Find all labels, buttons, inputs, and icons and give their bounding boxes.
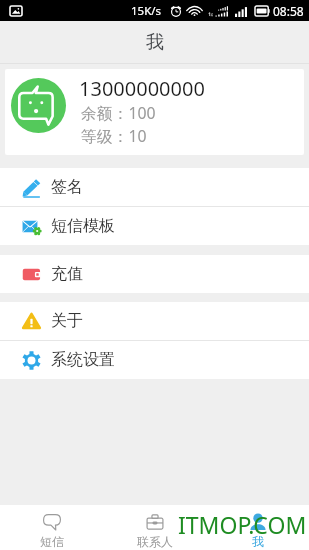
staticText: 13000000000 [79, 75, 205, 102]
button[interactable]: 短信 [0, 505, 103, 550]
staticText: ITMOP.COM [178, 509, 307, 540]
staticText: 15K/s [131, 3, 162, 19]
staticText: 系统设置 [51, 350, 115, 370]
staticText: 余额：100 [81, 102, 156, 124]
staticText: 充值 [51, 264, 83, 284]
button[interactable]: 系统设置 [0, 341, 309, 379]
button[interactable]: 13000000000 [5, 69, 304, 155]
button[interactable]: 充值 [0, 255, 309, 293]
staticText: 等级：10 [81, 125, 147, 147]
button[interactable]: 我 [206, 505, 309, 550]
staticText: 关于 [51, 311, 83, 331]
button[interactable]: 短信模板 [0, 207, 309, 245]
button[interactable]: 关于 [0, 302, 309, 340]
staticText: 我 [146, 31, 164, 54]
staticText: 联系人 [137, 534, 173, 549]
staticText: 签名 [51, 177, 83, 197]
staticText: 短信 [40, 534, 64, 549]
staticText: 我 [252, 534, 264, 549]
staticText: 短信模板 [51, 216, 115, 236]
button[interactable]: 签名 [0, 168, 309, 206]
button[interactable]: 联系人 [103, 505, 206, 550]
staticText: 08:58 [273, 3, 304, 19]
